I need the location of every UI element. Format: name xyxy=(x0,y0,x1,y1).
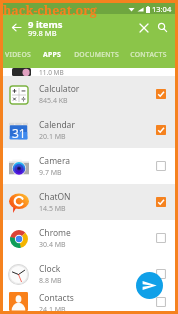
staticText: 24.1 MB xyxy=(39,305,66,311)
staticText: ChatON xyxy=(39,191,71,203)
staticText: hack-cheat.org xyxy=(3,2,97,19)
button[interactable]: Close xyxy=(134,18,153,37)
staticText: Contacts xyxy=(39,292,74,304)
staticText: Calculator xyxy=(39,83,80,95)
staticText: 845.4 KB xyxy=(39,96,68,106)
staticText: 13:04 xyxy=(152,4,172,14)
staticText: APPS xyxy=(43,50,61,59)
button[interactable]: Send xyxy=(136,272,163,299)
button[interactable]: Search xyxy=(153,18,172,37)
staticText: 99.8 MB xyxy=(28,28,57,38)
button[interactable]: DOCUMENTS xyxy=(71,41,121,68)
staticText: Clock xyxy=(39,263,61,275)
button[interactable]: CONTACTS xyxy=(121,41,175,68)
button[interactable]: APPS xyxy=(32,41,71,68)
button[interactable]: Chrome xyxy=(3,220,175,256)
staticText: Chrome xyxy=(39,227,71,239)
staticText: CONTACTS xyxy=(130,50,167,59)
staticText: 9.7 MB xyxy=(39,168,62,178)
staticText: 31 xyxy=(12,125,26,140)
staticText: VIDEOS xyxy=(5,50,31,59)
staticText: 9 items xyxy=(28,18,63,31)
button[interactable]: Clock xyxy=(3,256,175,292)
button[interactable]: Camera xyxy=(3,148,175,184)
staticText: Camera xyxy=(39,155,70,167)
staticText: 14.5 MB xyxy=(39,204,66,214)
staticText: 30.4 MB xyxy=(39,240,66,250)
staticText: 8.8 MB xyxy=(39,276,62,286)
staticText: 20.1 MB xyxy=(39,132,66,142)
staticText: 11.0 MB xyxy=(39,68,64,76)
staticText: Calendar xyxy=(39,119,75,131)
button[interactable]: ChatON xyxy=(3,184,175,220)
button[interactable]: Contacts xyxy=(3,292,175,311)
button[interactable]: VIDEOS xyxy=(3,41,32,68)
staticText: DOCUMENTS xyxy=(74,50,119,59)
button[interactable]: Back xyxy=(7,18,26,37)
button[interactable]: 31 xyxy=(3,112,175,148)
button[interactable]: Calculator xyxy=(3,76,175,112)
